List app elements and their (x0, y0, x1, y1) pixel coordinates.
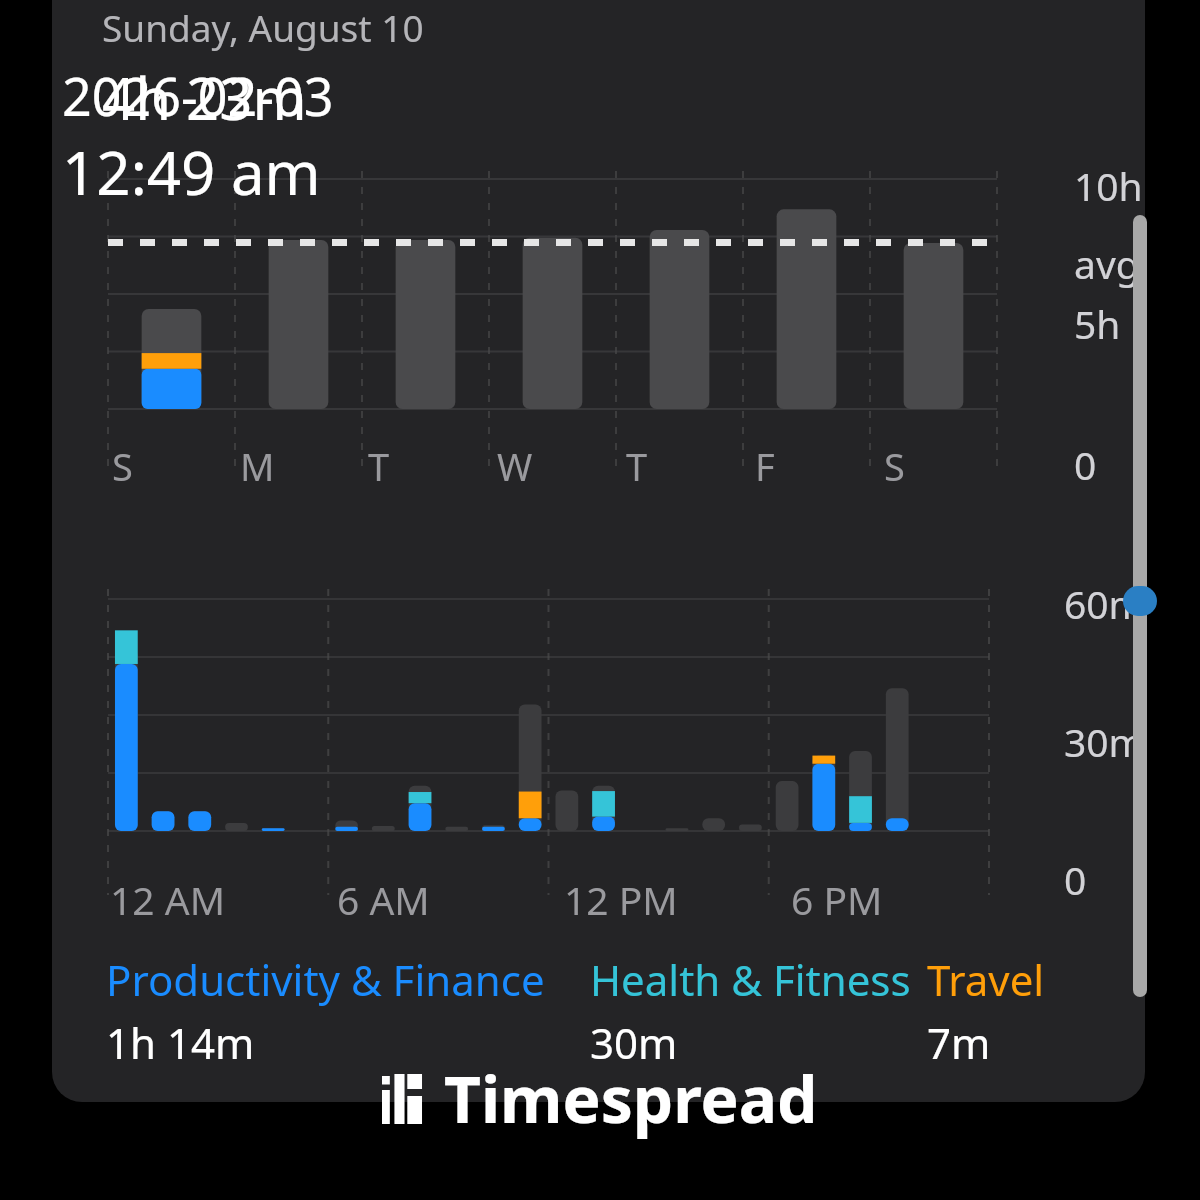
staticText: 6 PM (791, 873, 883, 926)
staticText: Health & Fitness (590, 951, 911, 1008)
other: Scroll position (1133, 215, 1147, 997)
staticText: 12 AM (110, 873, 226, 926)
staticText: 7m (927, 1014, 991, 1071)
staticText: avg (1074, 237, 1140, 290)
button[interactable]: Travel (927, 951, 1109, 1071)
staticText: S (112, 440, 133, 492)
staticText: 12:49 am (62, 131, 321, 213)
staticText: F (755, 440, 775, 492)
staticText: M (240, 440, 275, 492)
staticText: Travel (927, 951, 1045, 1008)
staticText: 5h (1074, 297, 1121, 350)
staticText: T (626, 440, 648, 492)
staticText: Productivity & Finance (106, 951, 545, 1008)
staticText: 0 (1074, 438, 1097, 491)
staticText: W (497, 440, 533, 492)
staticText: 12 PM (564, 873, 678, 926)
staticText: 60m (1064, 577, 1145, 630)
staticText: 10h (1074, 159, 1143, 212)
staticText: Sunday, August 10 (102, 2, 424, 52)
button[interactable]: 10h (96, 157, 1145, 505)
staticText: 1h 14m (106, 1014, 255, 1071)
button[interactable]: 60m (96, 581, 1145, 933)
staticText: Timespread (444, 1055, 818, 1142)
staticText: 4h 23m (102, 58, 307, 137)
staticText: 30m (590, 1014, 678, 1071)
staticText: 0 (1064, 853, 1087, 906)
staticText: 2026-02-03 (62, 60, 334, 131)
button[interactable]: Sunday, August 10 (52, 0, 1145, 1102)
staticText: 30m (1064, 715, 1145, 768)
button[interactable]: Productivity & Finance (106, 951, 590, 1071)
staticText: T (368, 440, 390, 492)
button[interactable]: Health & Fitness (590, 951, 927, 1071)
staticText: 6 AM (337, 873, 430, 926)
staticText: S (884, 440, 905, 492)
